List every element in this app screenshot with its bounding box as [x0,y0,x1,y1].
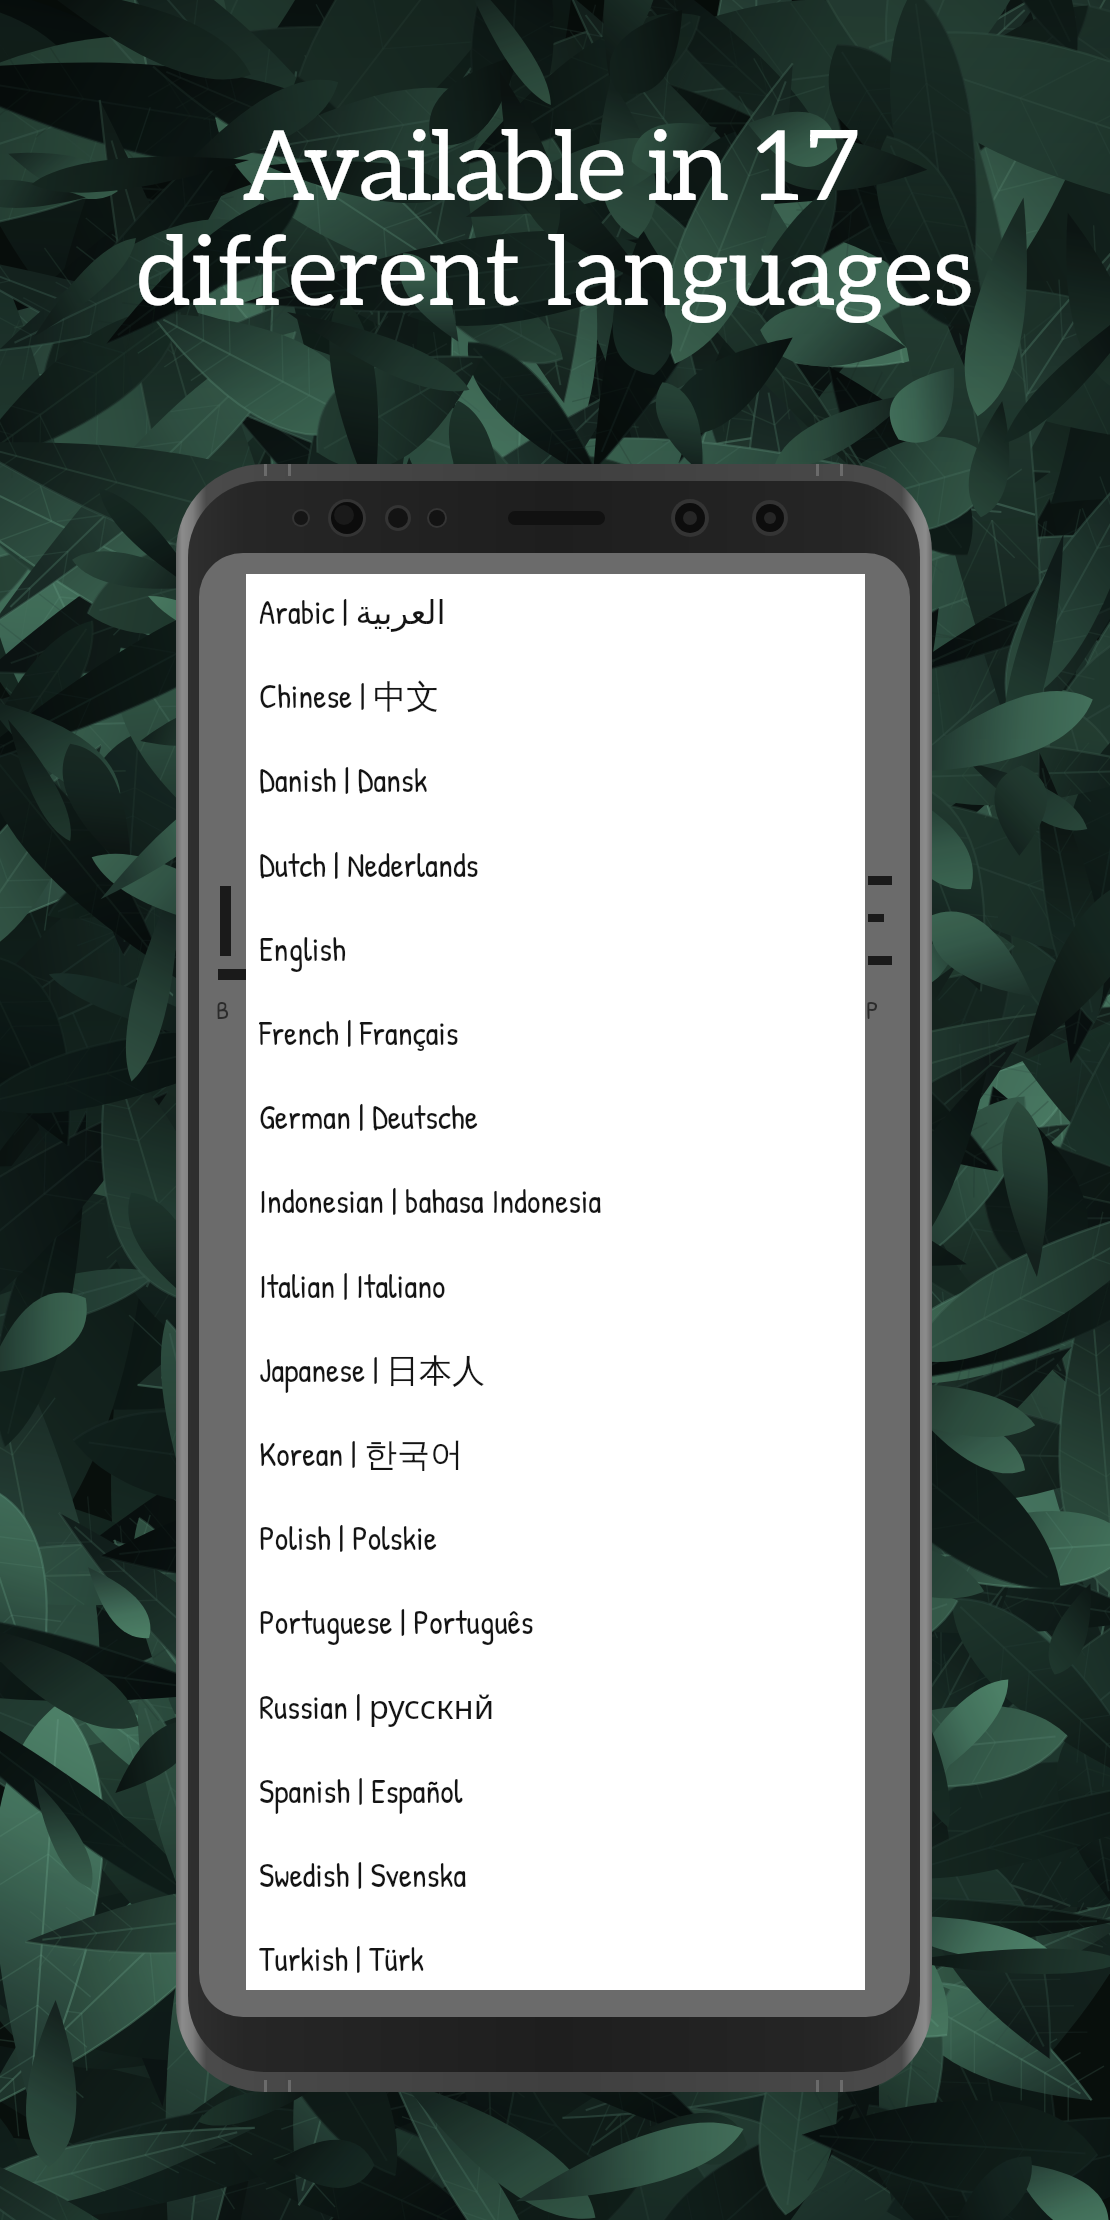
button[interactable]: Polish | Polskie [246,1496,865,1580]
button[interactable]: Russian | русскнй [246,1665,865,1749]
staticText: Japanese | 日本人 [259,1348,486,1393]
button[interactable]: Portuguese | Português [246,1580,865,1664]
button[interactable]: Danish | Dansk [246,738,865,822]
staticText: B [216,992,230,1027]
staticText: Swedish | Svenska [259,1853,467,1898]
staticText: English [259,927,346,972]
staticText: different languages [136,218,974,333]
button[interactable]: Italian | Italiano [246,1244,865,1328]
staticText: Available in 17 [242,113,860,228]
staticText: Arabic | العربية [259,590,446,635]
staticText: Chinese | 中文 [259,674,440,719]
staticText: German | Deutsche [259,1095,478,1140]
button[interactable]: Swedish | Svenska [246,1833,865,1917]
staticText: Polish | Polskie [259,1516,437,1561]
button[interactable]: Indonesian | bahasa Indonesia [246,1159,865,1243]
button[interactable]: Chinese | 中文 [246,654,865,738]
staticText: Danish | Dansk [259,758,428,803]
staticText: P [866,992,879,1027]
button[interactable]: English [246,907,865,991]
staticText: Korean | 한국어 [259,1432,464,1477]
button[interactable]: Japanese | 日本人 [246,1328,865,1412]
staticText: Italian | Italiano [259,1264,446,1309]
button[interactable]: Spanish | Español [246,1749,865,1833]
staticText: Indonesian | bahasa Indonesia [259,1179,602,1224]
button[interactable]: French | Français [246,991,865,1075]
staticText: Dutch | Nederlands [259,843,479,888]
staticText: Portuguese | Português [259,1600,534,1645]
staticText: French | Français [259,1011,459,1056]
button[interactable]: Turkish | Türk [246,1917,865,2001]
staticText: Russian | русскнй [259,1684,495,1730]
button[interactable]: German | Deutsche [246,1075,865,1159]
staticText: Turkish | Türk [259,1937,425,1982]
button[interactable]: Arabic | العربية [246,570,865,654]
button[interactable]: Dutch | Nederlands [246,823,865,907]
button[interactable]: Korean | 한국어 [246,1412,865,1496]
staticText: Spanish | Español [259,1769,463,1814]
